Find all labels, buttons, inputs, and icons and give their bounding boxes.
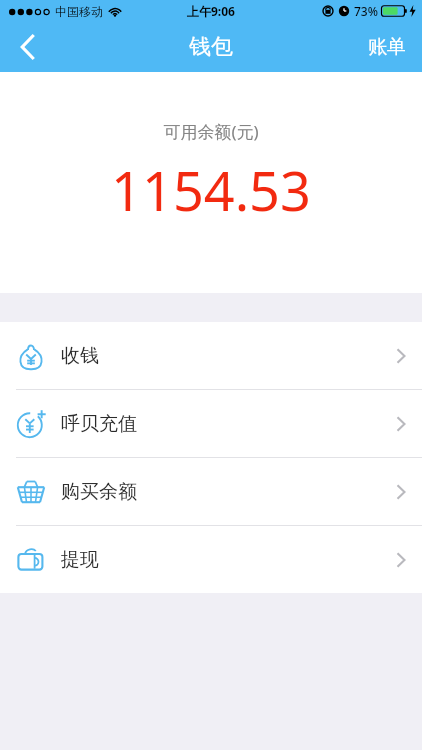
staticText: 钱包 <box>189 33 233 61</box>
button[interactable]: Back <box>0 22 56 72</box>
staticText: 呼贝充值 <box>61 412 137 436</box>
staticText: 账单 <box>368 35 406 59</box>
button[interactable]: 购买余额 <box>0 458 422 525</box>
button[interactable]: 账单 <box>352 22 422 72</box>
staticText: 收钱 <box>61 344 99 368</box>
staticText: 中国移动 <box>55 4 103 19</box>
staticText: 上午9:06 <box>187 3 235 19</box>
button[interactable]: 收钱 <box>0 322 422 389</box>
button[interactable]: 提现 <box>0 526 422 593</box>
staticText: 提现 <box>61 548 99 572</box>
staticText: 购买余额 <box>61 480 137 504</box>
staticText: 1154.53 <box>111 153 311 227</box>
staticText: 可用余额(元) <box>163 120 259 143</box>
staticText: 73% <box>354 3 378 19</box>
button[interactable]: 呼贝充值 <box>0 390 422 457</box>
